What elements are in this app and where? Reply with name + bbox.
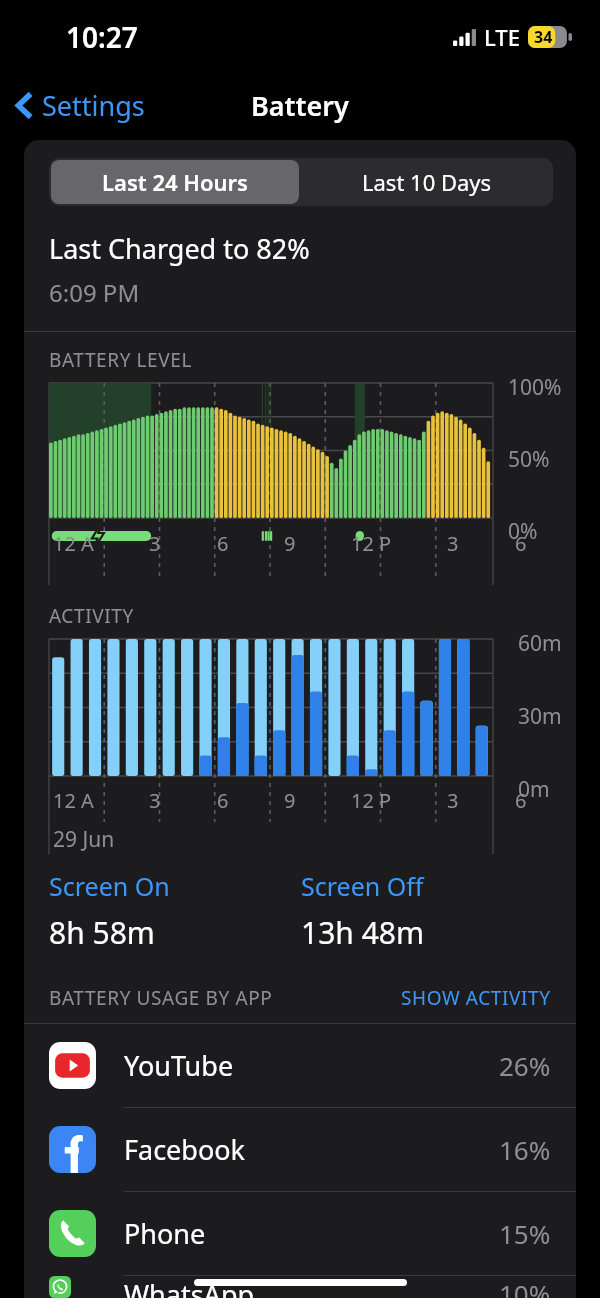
staticText: BATTERY USAGE BY APP: [49, 985, 273, 1011]
staticText: 3: [149, 787, 161, 814]
other: YouTube: [49, 1042, 96, 1089]
staticText: Screen On: [49, 869, 170, 903]
staticText: BATTERY LEVEL: [49, 347, 192, 373]
staticText: 6: [515, 530, 527, 557]
staticText: 100%: [508, 373, 562, 402]
staticText: 6: [217, 787, 229, 814]
staticText: Battery: [251, 87, 349, 124]
staticText: 3: [447, 530, 459, 557]
staticText: 9: [284, 787, 296, 814]
button[interactable]: Screen Off: [301, 869, 425, 953]
staticText: 12 A: [53, 530, 94, 557]
staticText: 9: [284, 530, 296, 557]
button[interactable]: Last 24 Hours: [51, 160, 299, 204]
staticText: 10%: [499, 1276, 551, 1298]
staticText: Phone: [124, 1215, 206, 1252]
staticText: Settings: [42, 87, 145, 124]
staticText: 6:09 PM: [49, 276, 140, 309]
staticText: 12 P: [351, 787, 392, 814]
button[interactable]: Last 10 Days: [301, 158, 553, 206]
button[interactable]: Facebook: [24, 1108, 576, 1191]
staticText: SHOW ACTIVITY: [401, 985, 551, 1011]
button[interactable]: WhatsApp: [24, 1276, 576, 1298]
staticText: Last Charged to 82%: [49, 230, 310, 267]
staticText: 3: [149, 530, 161, 557]
staticText: YouTube: [124, 1047, 234, 1084]
staticText: 60m: [518, 629, 562, 658]
staticText: 10:27: [66, 18, 138, 56]
other: Facebook: [49, 1126, 96, 1173]
staticText: Facebook: [124, 1131, 246, 1168]
staticText: Last 24 Hours: [102, 167, 248, 197]
staticText: 15%: [499, 1216, 551, 1251]
button[interactable]: YouTube: [24, 1024, 576, 1107]
staticText: 3: [447, 787, 459, 814]
staticText: 6: [217, 530, 229, 557]
staticText: Last 10 Days: [362, 167, 492, 197]
button[interactable]: Settings: [10, 79, 151, 132]
staticText: WhatsApp: [124, 1276, 255, 1298]
staticText: 0m: [518, 775, 550, 804]
staticText: ACTIVITY: [49, 603, 134, 629]
other: WhatsApp: [49, 1276, 96, 1298]
staticText: 26%: [499, 1048, 551, 1083]
button[interactable]: Phone: [24, 1192, 576, 1275]
staticText: 50%: [508, 445, 550, 474]
staticText: 12 P: [351, 530, 392, 557]
staticText: Screen Off: [301, 869, 424, 903]
staticText: 6: [515, 787, 527, 814]
staticText: 13h 48m: [301, 912, 425, 953]
staticText: 30m: [518, 702, 562, 731]
staticText: 34: [534, 26, 553, 48]
staticText: 0%: [508, 517, 538, 546]
staticText: 29 Jun: [53, 825, 115, 854]
staticText: LTE: [484, 22, 520, 52]
button[interactable]: Screen On: [49, 869, 301, 953]
staticText: 12 A: [53, 787, 94, 814]
staticText: 16%: [499, 1132, 551, 1167]
staticText: 8h 58m: [49, 912, 155, 953]
other: Phone: [49, 1210, 96, 1257]
button[interactable]: SHOW ACTIVITY: [401, 985, 551, 1011]
